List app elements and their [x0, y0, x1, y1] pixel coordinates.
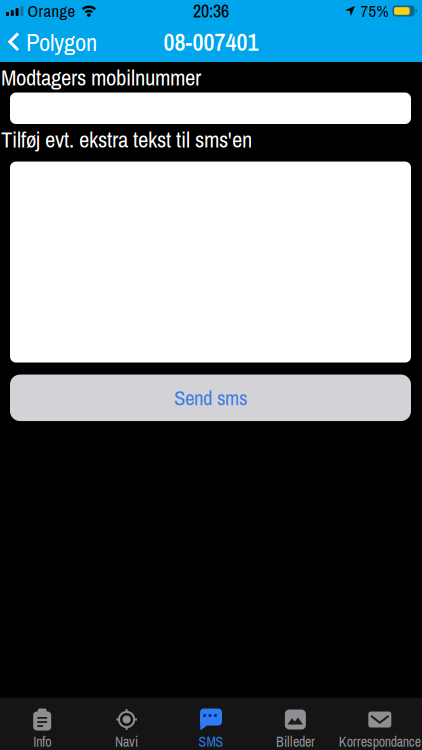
button[interactable]: Ekstra tekst til sms'en	[0, 162, 422, 363]
staticText: 75%	[360, 0, 388, 22]
staticText: SMS	[198, 732, 223, 750]
button[interactable]: Modtagers mobilnummer	[0, 92, 422, 124]
staticText: Navi	[115, 732, 138, 750]
staticText: Send sms	[174, 384, 247, 412]
button[interactable]: Info	[0, 708, 84, 750]
button[interactable]: Send sms	[0, 375, 422, 421]
staticText: Billeder	[276, 732, 315, 750]
staticText: Tilføj evt. ekstra tekst til sms'en	[1, 124, 252, 154]
staticText: 20:36	[193, 0, 229, 23]
staticText: Info	[33, 732, 51, 750]
button[interactable]: Korrespondance	[338, 708, 422, 750]
staticText: 08-007401	[163, 26, 258, 58]
staticText: Polygon	[26, 25, 97, 59]
button[interactable]: SMS	[169, 708, 253, 750]
staticText: Modtagers mobilnummer	[1, 62, 201, 92]
button[interactable]: Back to Polygon	[0, 25, 97, 59]
staticText: Korrespondance	[339, 732, 421, 750]
button[interactable]: Navi	[84, 708, 169, 750]
staticText: Orange	[27, 0, 75, 22]
button[interactable]: Billeder	[253, 708, 338, 750]
